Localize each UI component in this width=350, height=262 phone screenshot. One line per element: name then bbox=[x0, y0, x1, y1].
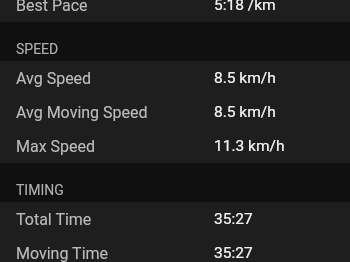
staticText: 35:27 bbox=[214, 210, 253, 228]
staticText: 11.3 km/h bbox=[214, 137, 285, 155]
staticText: 8.5 km/h bbox=[214, 69, 276, 87]
staticText: SPEED bbox=[16, 41, 59, 57]
button[interactable]: Total Time bbox=[0, 202, 350, 236]
staticText: Max Speed bbox=[16, 137, 96, 156]
button[interactable]: Max Speed bbox=[0, 129, 350, 163]
button[interactable]: Avg Moving Speed bbox=[0, 95, 350, 129]
staticText: Avg Moving Speed bbox=[16, 103, 148, 122]
staticText: Moving Time bbox=[16, 244, 109, 262]
button[interactable]: Avg Speed bbox=[0, 61, 350, 95]
staticText: Best Pace bbox=[16, 0, 88, 15]
staticText: 35:27 bbox=[214, 244, 253, 262]
staticText: Total Time bbox=[16, 210, 92, 229]
staticText: TIMING bbox=[16, 182, 64, 198]
button[interactable]: Best Pace bbox=[0, 0, 350, 22]
staticText: 8.5 km/h bbox=[214, 103, 276, 121]
staticText: 5:18 /km bbox=[214, 0, 276, 14]
staticText: Avg Speed bbox=[16, 69, 92, 88]
button[interactable]: Moving Time bbox=[0, 236, 350, 262]
